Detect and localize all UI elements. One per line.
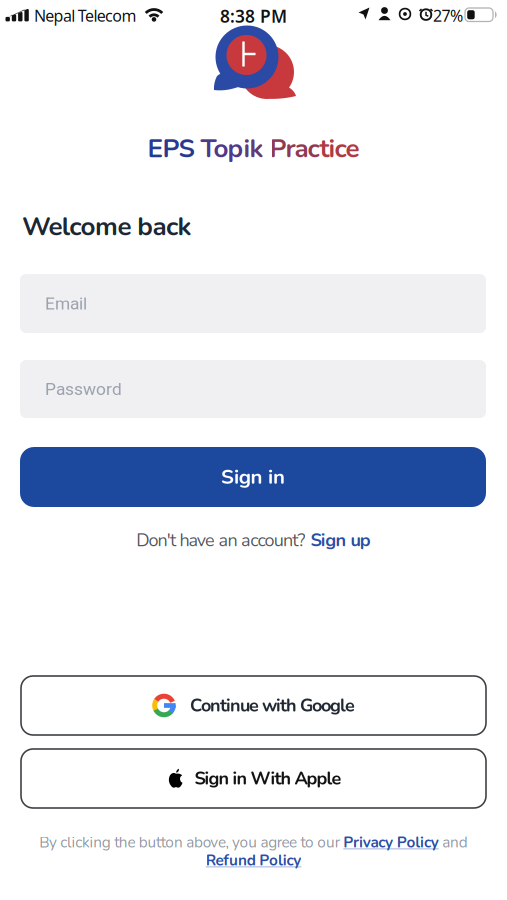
staticText: Prac bbox=[269, 131, 319, 166]
button[interactable]: Sign in With Apple bbox=[21, 749, 486, 808]
staticText: ik bbox=[243, 131, 269, 166]
staticText: Sign up bbox=[310, 528, 371, 553]
staticText: Password bbox=[45, 379, 122, 399]
button[interactable]: Password bbox=[20, 360, 486, 418]
staticText: Email bbox=[45, 293, 87, 314]
staticText: and bbox=[439, 832, 468, 853]
staticText: Sign in With Apple bbox=[194, 766, 341, 791]
staticText: EPS bbox=[147, 131, 200, 166]
button[interactable]: Refund Policy bbox=[206, 850, 301, 871]
staticText: 8:38 PM bbox=[220, 4, 287, 27]
staticText: tice bbox=[319, 131, 359, 166]
button[interactable]: Sign up bbox=[310, 528, 371, 553]
staticText: Privacy Policy bbox=[343, 832, 439, 853]
button[interactable]: Sign in bbox=[20, 447, 486, 507]
staticText: 27% bbox=[433, 5, 463, 26]
staticText: Continue with Google bbox=[190, 693, 355, 718]
staticText: Refund Policy bbox=[206, 850, 301, 871]
staticText: Welcome back bbox=[22, 209, 191, 244]
staticText: Don't have an account? bbox=[136, 528, 305, 553]
button[interactable]: Privacy Policy bbox=[343, 832, 439, 853]
staticText: Sign in bbox=[221, 463, 285, 491]
staticText: Top bbox=[200, 131, 243, 166]
staticText: Nepal Telecom bbox=[34, 5, 137, 26]
button[interactable]: Continue with Google bbox=[21, 676, 486, 735]
button[interactable]: Email bbox=[20, 274, 486, 333]
staticText: By clicking the button above, you agree … bbox=[39, 832, 343, 853]
